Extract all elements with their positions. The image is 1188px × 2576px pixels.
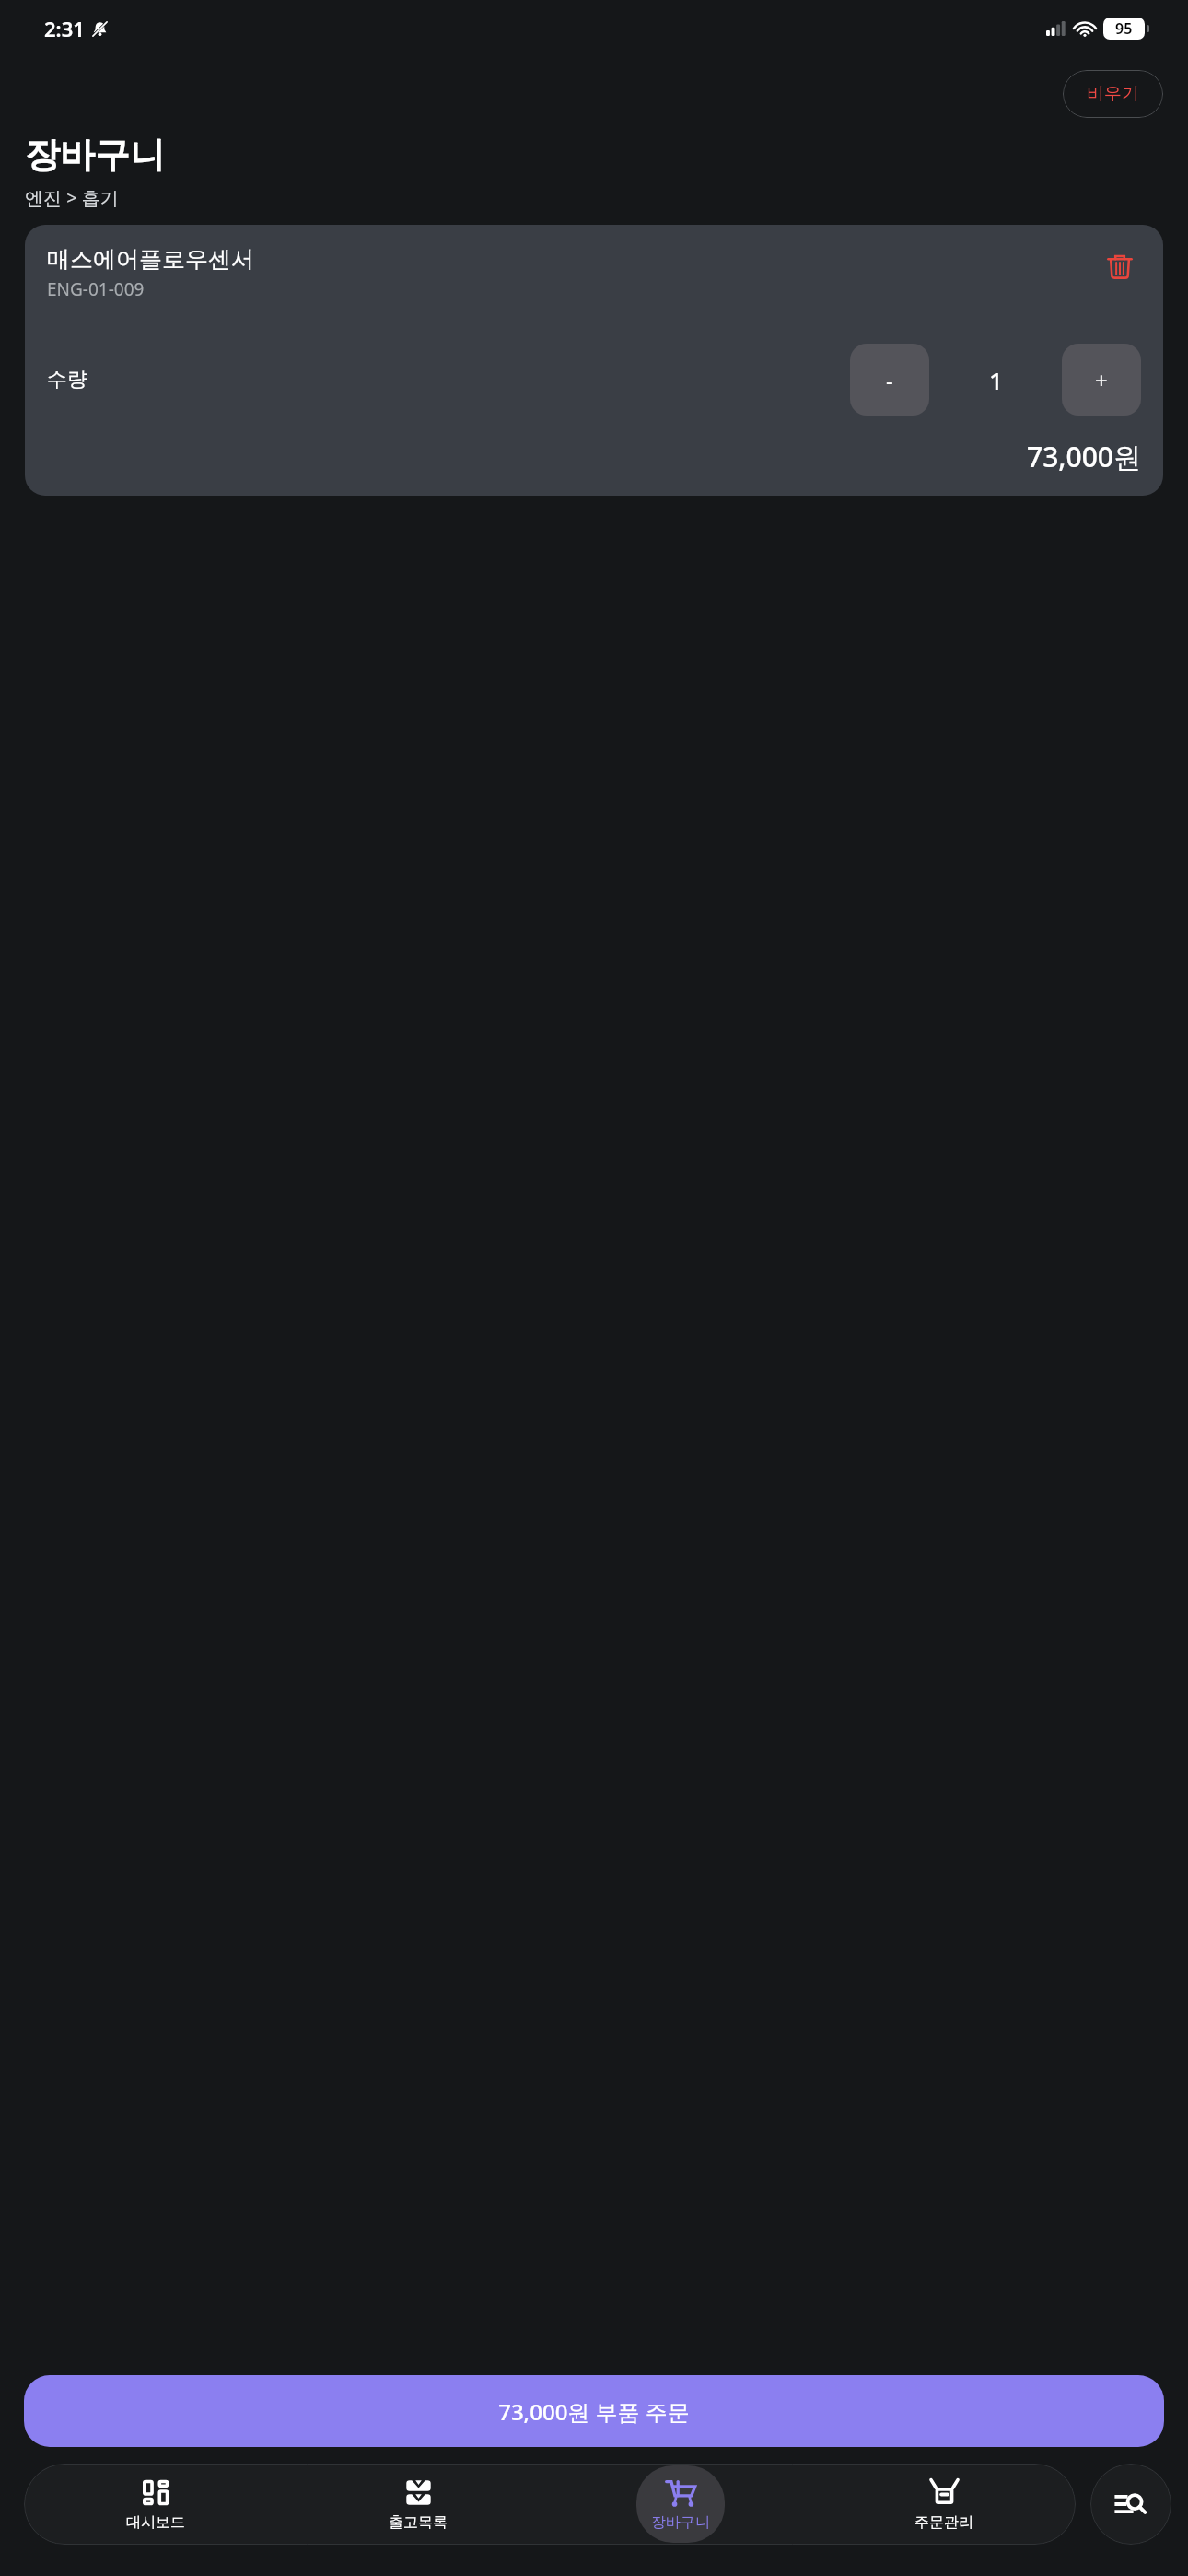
staticText: 73,000원: [1027, 438, 1141, 475]
button[interactable]: 주문관리: [900, 2465, 988, 2543]
staticText: 95: [1115, 18, 1133, 39]
staticText: 주문관리: [914, 2513, 973, 2532]
staticText: 출고목록: [389, 2513, 448, 2532]
button[interactable]: Search: [1090, 2464, 1171, 2545]
staticText: 장바구니: [25, 133, 165, 177]
button[interactable]: 매스에어플로우센서: [25, 225, 1163, 496]
staticText: 비우기: [1087, 83, 1139, 105]
staticText: 수량: [47, 367, 87, 392]
staticText: 장바구니: [651, 2513, 710, 2532]
button[interactable]: +: [1062, 344, 1141, 416]
staticText: 대시보드: [126, 2513, 185, 2532]
button[interactable]: 대시보드: [111, 2465, 200, 2543]
button[interactable]: -: [850, 344, 929, 416]
staticText: 엔진 > 흡기: [25, 185, 119, 210]
staticText: 1: [989, 364, 1003, 396]
button[interactable]: Delete item: [1099, 245, 1141, 287]
staticText: ENG-01-009: [47, 277, 145, 301]
staticText: +: [1095, 365, 1108, 395]
button[interactable]: 비우기: [1063, 70, 1163, 118]
button[interactable]: 장바구니: [636, 2465, 725, 2543]
staticText: -: [886, 365, 893, 395]
button[interactable]: 73,000원 부품 주문: [24, 2375, 1164, 2447]
staticText: 매스에어플로우센서: [47, 245, 254, 274]
button[interactable]: 출고목록: [374, 2465, 462, 2543]
staticText: 2:31: [44, 15, 85, 42]
staticText: 73,000원 부품 주문: [498, 2396, 690, 2427]
